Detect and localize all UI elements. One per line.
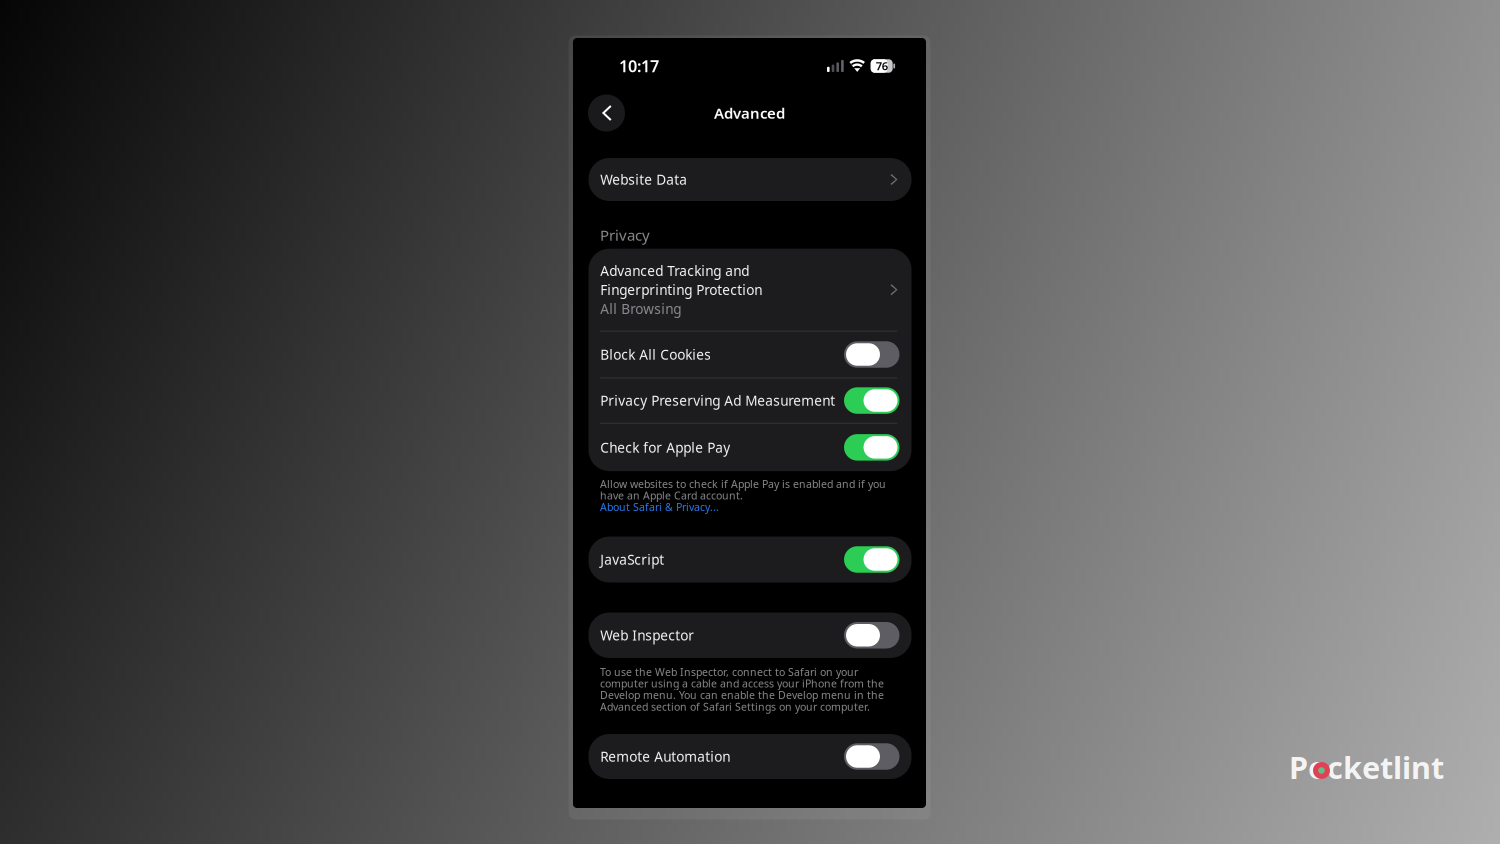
button[interactable]: JavaScript: [588, 536, 911, 582]
staticText: computer using a cable and access your i…: [600, 676, 884, 690]
button[interactable]: Advanced Tracking and: [588, 249, 911, 331]
button[interactable]: Block All Cookies: [588, 331, 911, 377]
staticText: Privacy: [600, 225, 650, 245]
button[interactable]: Back: [588, 94, 625, 131]
staticText: 10:17: [619, 55, 659, 77]
staticText: Check for Apple Pay: [600, 438, 730, 457]
staticText: JavaScript: [600, 550, 664, 569]
staticText: Web Inspector: [600, 626, 694, 644]
staticText: Block All Cookies: [600, 345, 711, 364]
button[interactable]: Website Data: [588, 158, 911, 201]
staticText: have an Apple Card account.: [600, 488, 743, 502]
button[interactable]: Web Inspector: [588, 612, 911, 658]
staticText: Advanced Tracking and: [600, 261, 749, 280]
staticText: Remote Automation: [600, 747, 730, 766]
staticText: To use the Web Inspector, connect to Saf…: [600, 665, 858, 679]
staticText: Develop menu. You can enable the Develop…: [600, 688, 884, 702]
button[interactable]: Remote Automation: [588, 734, 911, 779]
staticText: Pocketlint: [1289, 747, 1444, 787]
staticText: Advanced: [714, 103, 785, 123]
staticText: Website Data: [600, 170, 687, 189]
staticText: Fingerprinting Protection: [600, 280, 762, 299]
button[interactable]: Check for Apple Pay: [588, 424, 911, 471]
staticText: 76: [876, 58, 888, 74]
staticText: All Browsing: [600, 299, 681, 318]
staticText: Privacy Preserving Ad Measurement: [600, 391, 835, 410]
button[interactable]: Privacy Preserving Ad Measurement: [588, 378, 911, 423]
staticText: Advanced section of Safari Settings on y…: [600, 699, 870, 714]
button[interactable]: About Safari & Privacy...: [600, 501, 719, 513]
staticText: Allow websites to check if Apple Pay is …: [600, 477, 886, 491]
staticText: About Safari & Privacy...: [600, 500, 719, 514]
